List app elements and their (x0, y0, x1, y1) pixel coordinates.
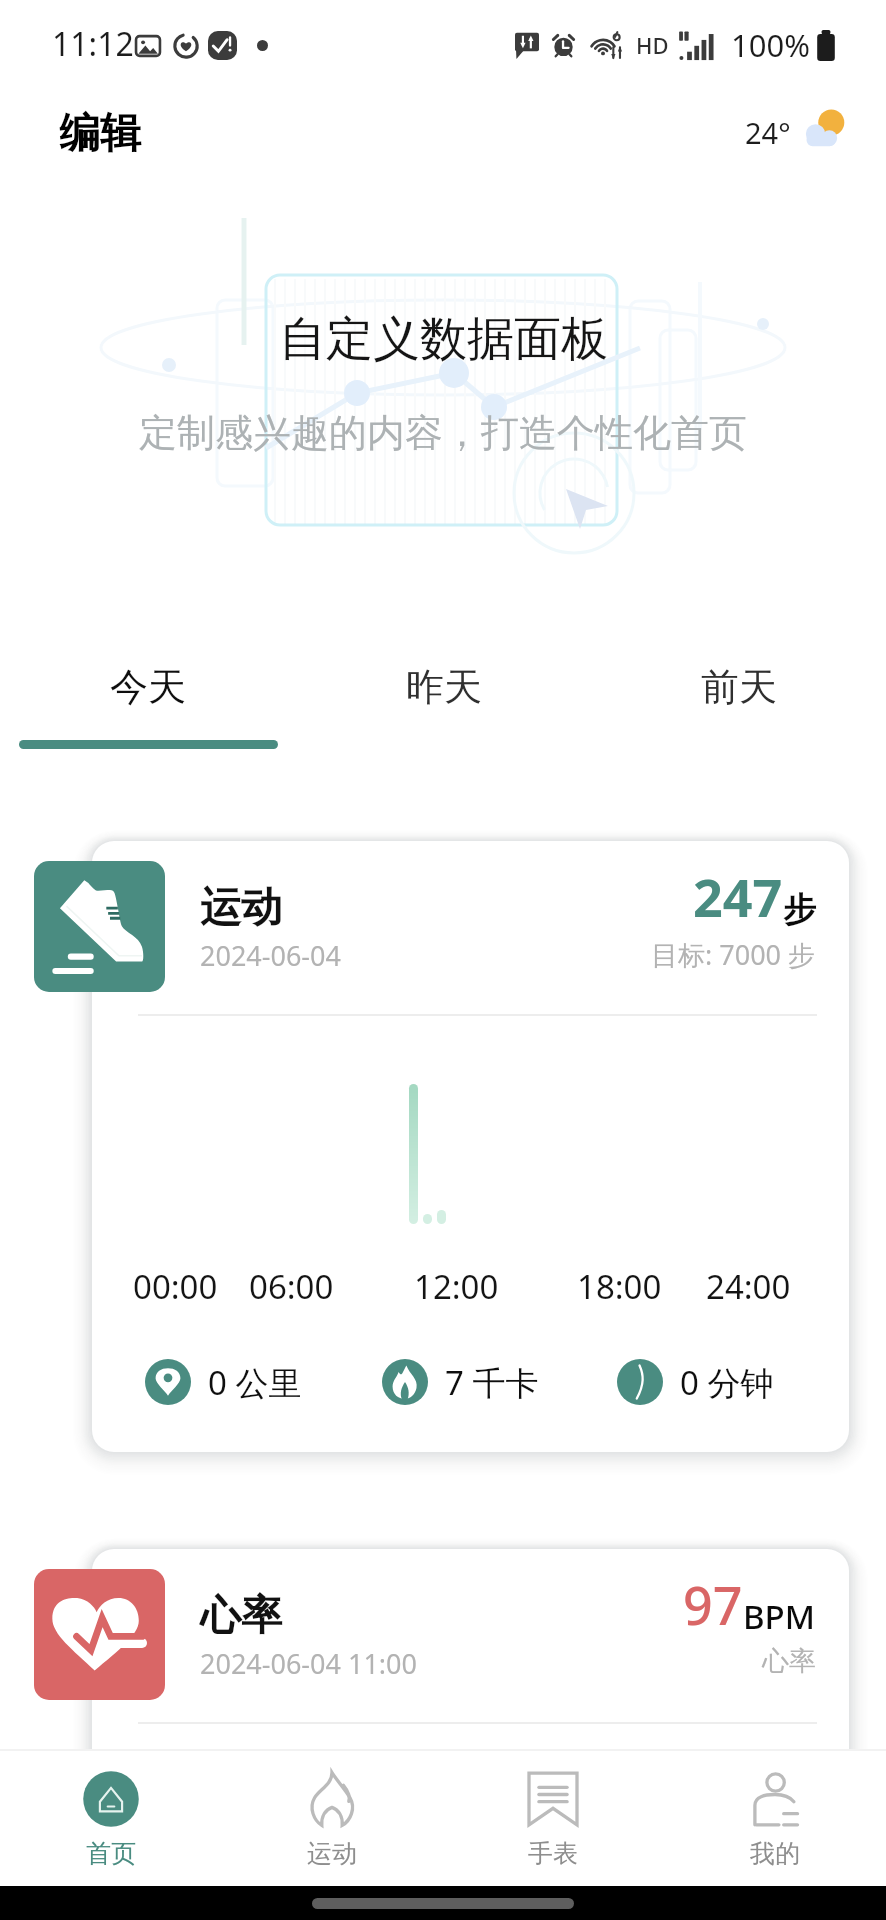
staticText: 00:00 (133, 1264, 218, 1309)
staticText: 我的 (750, 1838, 800, 1869)
staticText: 前天 (701, 663, 777, 711)
staticText: 06:00 (249, 1264, 334, 1309)
button[interactable]: 我的 (664, 1749, 886, 1886)
button[interactable]: 心率 (92, 1549, 849, 1839)
button[interactable]: 昨天 (296, 632, 591, 752)
staticText: 步 (783, 889, 816, 931)
staticText: HD (636, 30, 669, 60)
staticText: 手表 (528, 1838, 578, 1869)
staticText: 100% (731, 24, 810, 66)
staticText: 0 公里 (208, 1360, 302, 1405)
staticText: 0 分钟 (680, 1360, 774, 1405)
button[interactable]: Weather (745, 111, 842, 153)
staticText: 定制感兴趣的内容，打造个性化首页 (139, 409, 747, 457)
staticText: 2024-06-04 (200, 937, 341, 974)
button[interactable]: 运动 (92, 841, 849, 1452)
staticText: 自定义数据面板 (279, 310, 608, 369)
staticText: 97 (683, 1569, 743, 1640)
staticText: 首页 (86, 1838, 136, 1869)
staticText: BPM (743, 1594, 816, 1639)
staticText: 心率 (762, 1644, 816, 1678)
staticText: 昨天 (406, 663, 482, 711)
button[interactable]: 0 分钟 (617, 1359, 774, 1405)
staticText: 18:00 (577, 1264, 662, 1309)
staticText: 今天 (110, 663, 186, 711)
button[interactable]: 7 千卡 (382, 1359, 539, 1405)
staticText: 7 千卡 (445, 1360, 539, 1405)
button[interactable]: 今天 (0, 632, 296, 752)
staticText: 编辑 (59, 108, 141, 160)
staticText: 24° (745, 113, 791, 152)
staticText: 心率 (200, 1590, 282, 1642)
staticText: 运动 (307, 1838, 357, 1869)
staticText: 运动 (200, 882, 282, 934)
button[interactable]: 前天 (591, 632, 886, 752)
button[interactable]: 运动 (221, 1749, 442, 1886)
button[interactable]: 手表 (442, 1749, 664, 1886)
staticText: 24:00 (706, 1264, 791, 1309)
staticText: 2024-06-04 11:00 (200, 1645, 417, 1682)
staticText: 目标: 7000 步 (651, 936, 816, 973)
staticText: 12:00 (414, 1264, 499, 1309)
button[interactable]: 0 公里 (145, 1359, 302, 1405)
staticText: 247 (693, 861, 783, 932)
staticText: 11:12 (52, 22, 134, 66)
button[interactable]: 首页 (0, 1749, 221, 1886)
